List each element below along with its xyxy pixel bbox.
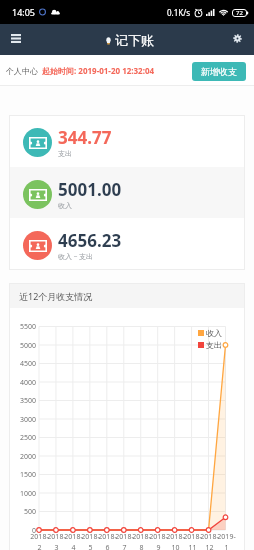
button[interactable]: Settings [220,24,254,55]
staticText: 2018- 2 [30,532,49,550]
staticText: 5001.00 [58,178,122,201]
staticText: 14:05 [12,6,36,18]
staticText: 新增收支 [201,66,237,77]
staticText: 1000 [19,489,36,499]
staticText: 收入 [58,201,72,210]
staticText: 2019- 1 [217,532,236,550]
staticText: 3500 [19,396,36,406]
staticText: 1500 [19,470,36,480]
staticText: 0.1K/s [167,7,191,18]
staticText: 支出 [58,149,72,158]
staticText: 344.77 [58,126,112,149]
staticText: 近12个月收支情况 [19,290,93,302]
staticText: 500 [23,507,36,517]
staticText: 4000 [19,378,36,388]
staticText: 收入 [206,328,222,338]
staticText: 支出 [206,340,222,350]
staticText: 2018- 5 [81,532,100,550]
staticText: 记下账 [115,32,154,48]
staticText: 2018- 3 [47,532,66,550]
staticText: 2500 [19,433,36,443]
button[interactable]: 新增收支 [192,62,246,81]
staticText: 2018- 7 [115,532,134,550]
staticText: 2000 [19,452,36,462]
staticText: 72 [236,9,243,17]
staticText: 4656.23 [58,229,122,252]
staticText: 收入－支出 [58,252,93,261]
staticText: 0 [31,526,36,536]
staticText: 5000 [19,341,36,351]
button[interactable]: Menu [0,24,32,55]
staticText: 起始时间: 2019-01-20 12:32:04 [42,65,155,76]
staticText: 3000 [19,415,36,425]
button[interactable]: 4656.23 [9,218,245,270]
staticText: 2018- 4 [64,532,83,550]
staticText: 2018- 6 [98,532,117,550]
staticText: 2018- 12 [200,532,219,550]
staticText: 2018- 8 [132,532,151,550]
button[interactable]: 5001.00 [9,167,245,219]
staticText: 5500 [19,322,36,332]
staticText: 4500 [19,359,36,369]
button[interactable]: 个人中心 [6,66,38,76]
staticText: 2018- 10 [166,532,185,550]
button[interactable]: 344.77 [9,115,245,167]
staticText: 2018- 9 [149,532,168,550]
staticText: 2018- 11 [183,532,202,550]
